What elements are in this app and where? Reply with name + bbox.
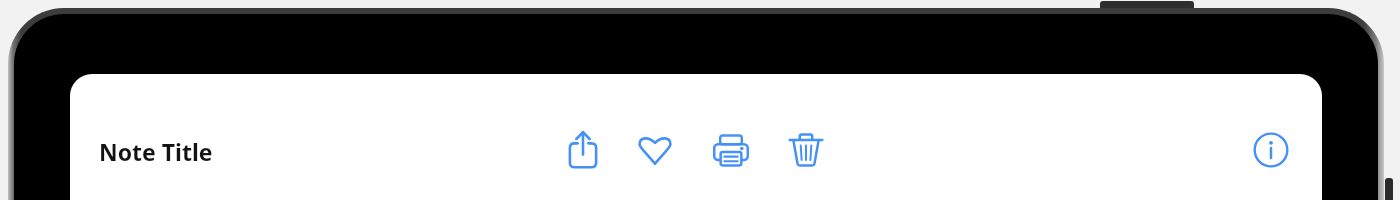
button[interactable]: Favorite: [632, 127, 678, 173]
button[interactable]: Delete: [783, 127, 829, 173]
staticText: Note Title: [99, 136, 213, 167]
button[interactable]: Share: [560, 127, 606, 173]
button[interactable]: Info: [1248, 127, 1294, 173]
button[interactable]: Print: [708, 127, 754, 173]
